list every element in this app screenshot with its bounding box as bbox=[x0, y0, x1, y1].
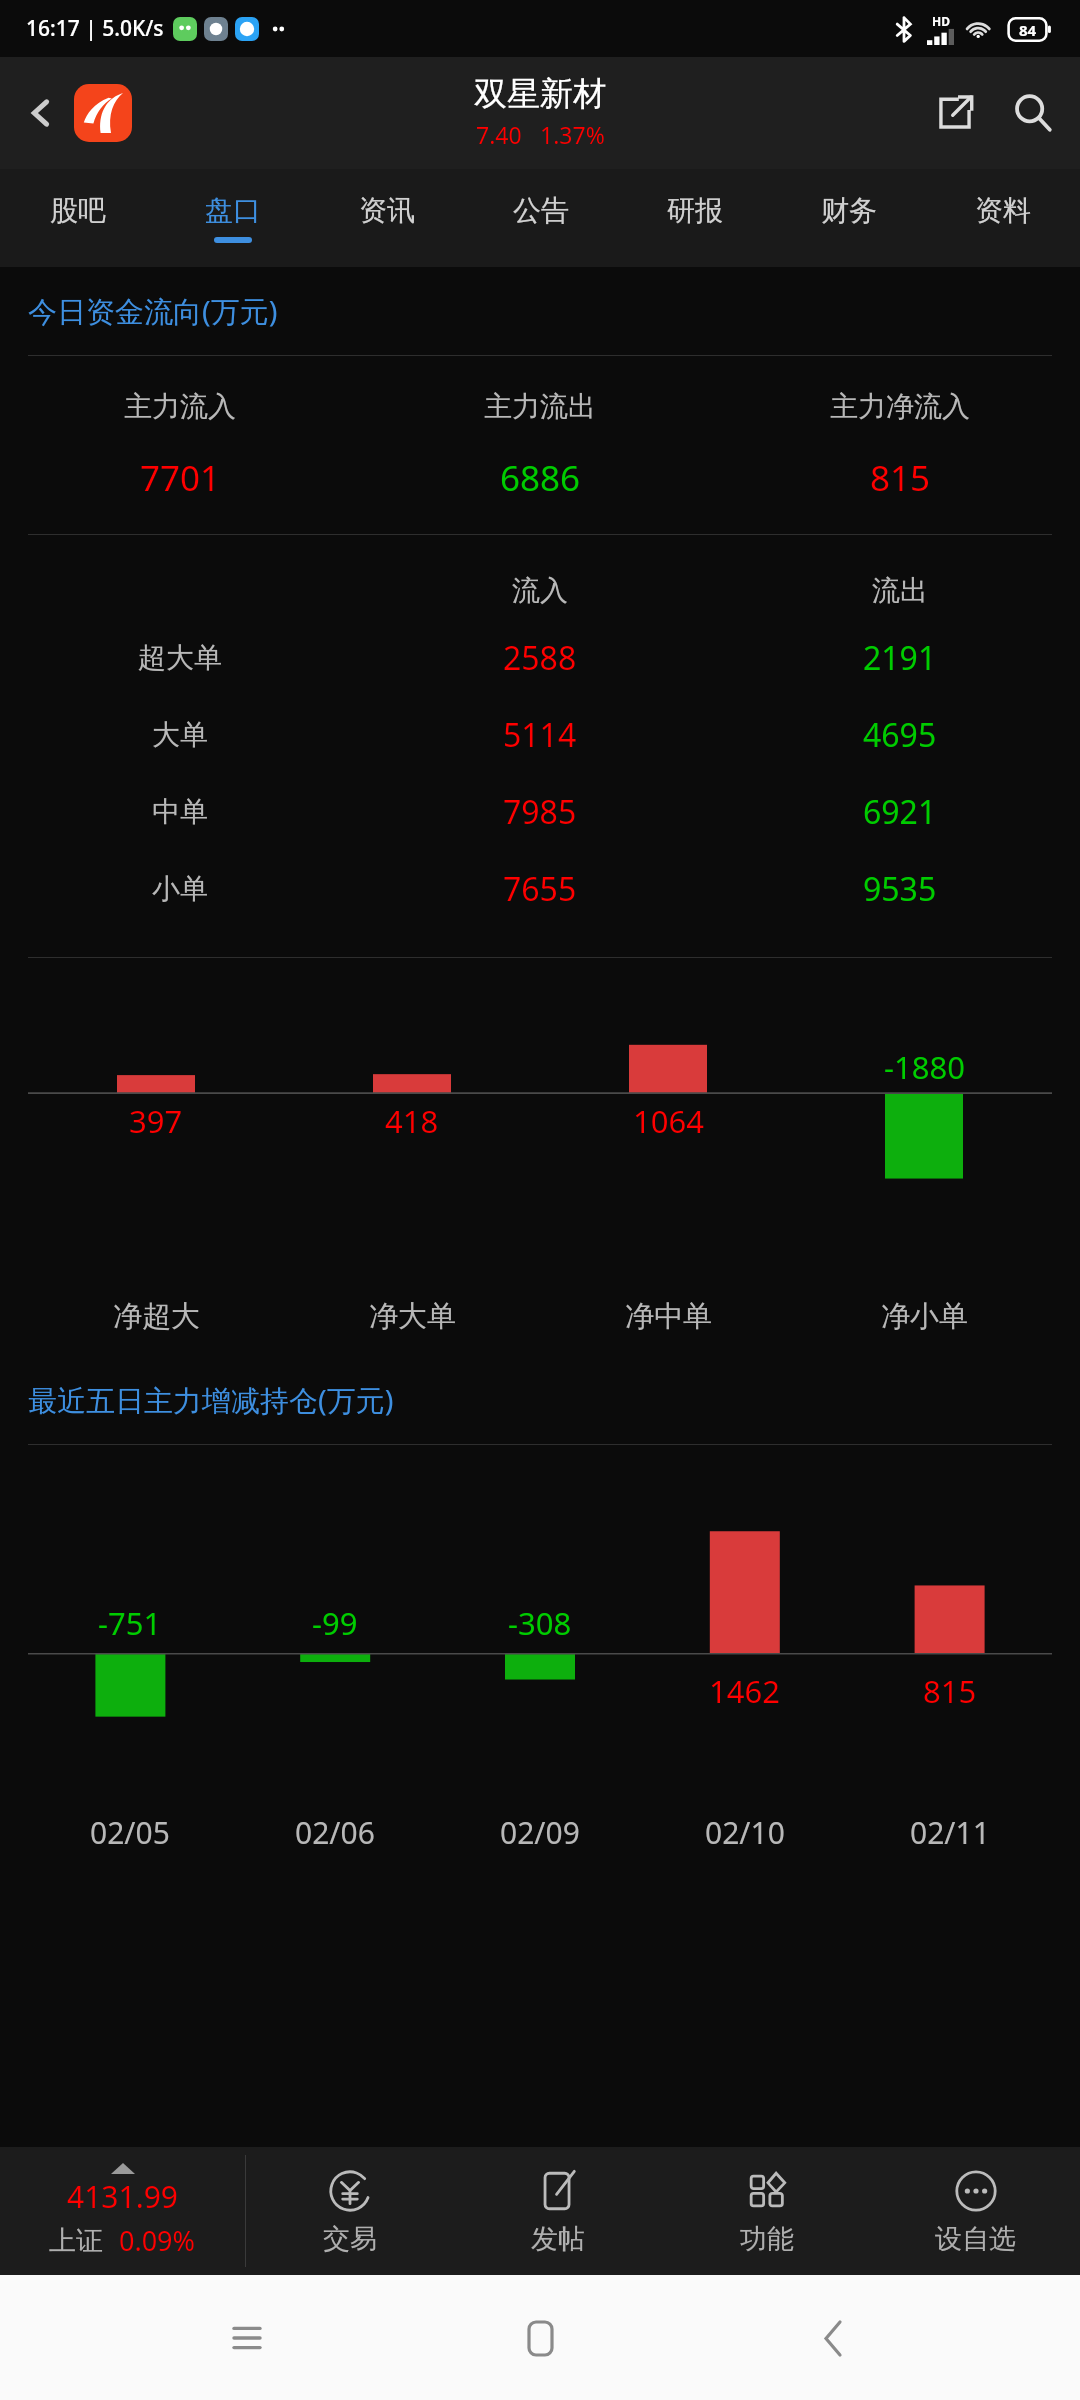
staticText: 6886 bbox=[500, 454, 581, 502]
staticText: -751 bbox=[98, 1602, 162, 1644]
staticText: 7655 bbox=[503, 867, 577, 911]
button[interactable]: 资料 bbox=[926, 169, 1080, 267]
staticText: 815 bbox=[870, 454, 931, 502]
staticText: 02/11 bbox=[910, 1812, 990, 1853]
button[interactable]: 超大单 bbox=[0, 619, 1080, 696]
button[interactable]: 股吧 bbox=[0, 169, 155, 267]
staticText: 设自选 bbox=[935, 2222, 1016, 2256]
button[interactable]: 设自选 bbox=[871, 2147, 1080, 2275]
staticText: 超大单 bbox=[138, 640, 222, 675]
staticText: 净小单 bbox=[881, 1298, 968, 1335]
button[interactable]: Back bbox=[10, 82, 72, 144]
staticText: HD bbox=[932, 13, 950, 29]
staticText: 小单 bbox=[152, 871, 208, 906]
staticText: 02/10 bbox=[705, 1812, 785, 1853]
staticText: 双星新材 bbox=[474, 73, 606, 115]
staticText: 净中单 bbox=[625, 1298, 712, 1335]
staticText: 净超大 bbox=[113, 1298, 200, 1335]
button[interactable]: 功能 bbox=[662, 2147, 871, 2275]
button[interactable]: Share bbox=[922, 80, 988, 146]
button[interactable]: 研报 bbox=[618, 169, 772, 267]
staticText: 1462 bbox=[709, 1670, 780, 1712]
button[interactable]: 公告 bbox=[464, 169, 618, 267]
staticText: 418 bbox=[385, 1100, 439, 1142]
staticText: 大单 bbox=[152, 717, 208, 752]
staticText: 7985 bbox=[503, 790, 577, 834]
staticText: 4695 bbox=[863, 713, 937, 757]
button[interactable]: Back bbox=[787, 2292, 879, 2384]
staticText: 2588 bbox=[503, 636, 577, 680]
staticText: 主力流入 bbox=[124, 389, 236, 424]
staticText: 2191 bbox=[863, 636, 937, 680]
staticText: 02/06 bbox=[295, 1812, 375, 1853]
staticText: 815 bbox=[923, 1670, 977, 1712]
button[interactable]: 中单 bbox=[0, 773, 1080, 850]
staticText: 最近五日主力增减持仓(万元) bbox=[28, 1380, 394, 1420]
staticText: 流入 bbox=[512, 573, 568, 608]
staticText: -1880 bbox=[884, 1046, 965, 1088]
button[interactable]: 盘口 bbox=[155, 169, 310, 267]
staticText: 主力净流入 bbox=[830, 389, 970, 424]
staticText: 0.09% bbox=[119, 2222, 196, 2259]
button[interactable]: 交易 bbox=[246, 2147, 454, 2275]
staticText: 盘口 bbox=[205, 193, 261, 228]
button[interactable]: 资讯 bbox=[310, 169, 464, 267]
staticText: -99 bbox=[312, 1602, 358, 1644]
staticText: 1064 bbox=[633, 1100, 704, 1142]
staticText: 5114 bbox=[503, 713, 577, 757]
staticText: -308 bbox=[508, 1602, 572, 1644]
button[interactable]: App logo bbox=[74, 84, 132, 142]
staticText: 交易 bbox=[323, 2222, 377, 2256]
staticText: 流出 bbox=[872, 573, 928, 608]
button[interactable]: 发帖 bbox=[454, 2147, 662, 2275]
staticText: 7701 bbox=[140, 454, 221, 502]
staticText: 资料 bbox=[975, 193, 1031, 228]
staticText: 9535 bbox=[863, 867, 937, 911]
button[interactable]: Search bbox=[1000, 80, 1066, 146]
staticText: 资讯 bbox=[359, 193, 415, 228]
staticText: 7.40 bbox=[476, 119, 522, 150]
staticText: 主力流出 bbox=[484, 389, 596, 424]
staticText: 股吧 bbox=[50, 193, 106, 228]
staticText: 4131.99 bbox=[67, 2176, 178, 2217]
staticText: 84 bbox=[1019, 20, 1037, 40]
staticText: 1.37% bbox=[540, 119, 605, 150]
staticText: 功能 bbox=[740, 2222, 794, 2256]
button[interactable]: Recents bbox=[201, 2292, 293, 2384]
staticText: 上证 bbox=[49, 2224, 103, 2258]
staticText: 今日资金流向(万元) bbox=[28, 291, 278, 331]
staticText: 02/05 bbox=[90, 1812, 170, 1853]
staticText: 02/09 bbox=[500, 1812, 580, 1853]
staticText: 公告 bbox=[513, 193, 569, 228]
staticText: 研报 bbox=[667, 193, 723, 228]
staticText: 6921 bbox=[863, 790, 937, 834]
button[interactable]: 4131.99 bbox=[0, 2147, 245, 2275]
staticText: 发帖 bbox=[531, 2222, 585, 2256]
button[interactable]: 大单 bbox=[0, 696, 1080, 773]
staticText: 中单 bbox=[152, 794, 208, 829]
staticText: 16:17 | 5.0K/s bbox=[26, 14, 164, 43]
staticText: 397 bbox=[129, 1100, 183, 1142]
button[interactable]: 财务 bbox=[772, 169, 926, 267]
staticText: 财务 bbox=[821, 193, 877, 228]
button[interactable]: Home bbox=[494, 2292, 586, 2384]
button[interactable]: 小单 bbox=[0, 850, 1080, 927]
staticText: 净大单 bbox=[369, 1298, 456, 1335]
